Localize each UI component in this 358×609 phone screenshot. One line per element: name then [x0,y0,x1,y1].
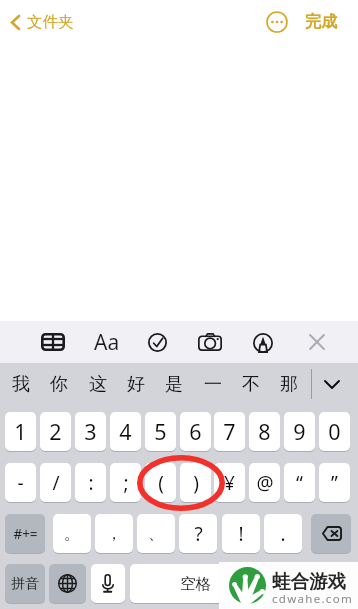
button[interactable]: 。 [53,514,91,553]
button[interactable]: 换行 [264,564,351,603]
staticText: 8 [258,417,271,446]
button[interactable]: 好 [119,368,153,400]
button[interactable]: 那 [272,368,306,400]
button[interactable]: . [264,514,302,553]
staticText: #+= [13,525,38,543]
button[interactable]: ” [319,463,350,502]
staticText: 那 [280,373,298,396]
staticText: . [280,521,286,547]
staticText: 3 [84,417,97,446]
staticText: 6 [189,417,202,446]
button[interactable]: 3 [75,412,106,451]
button[interactable]: “ [284,463,315,502]
staticText: 你 [50,373,68,396]
staticText: ， [106,524,122,544]
staticText: : [88,470,94,496]
staticText: 0 [328,417,341,446]
button[interactable]: 一 [196,368,230,400]
button[interactable]: @ [249,463,280,502]
staticText: ” [331,470,338,496]
button[interactable]: - [5,463,36,502]
button[interactable]: 、 [137,514,175,553]
staticText: 不 [242,373,260,396]
staticText: 9 [293,417,306,446]
button[interactable]: 是 [157,368,191,400]
button[interactable]: 6 [180,412,211,451]
button[interactable]: 你 [42,368,76,400]
staticText: 这 [89,373,107,396]
button[interactable]: ! [222,514,260,553]
button[interactable]: 8 [249,412,280,451]
button[interactable]: ) [180,463,211,502]
button[interactable]: 我 [4,368,38,400]
button[interactable]: ， [95,514,133,553]
staticText: 我 [12,373,30,396]
staticText: 。 [64,524,80,544]
button[interactable]: 4 [110,412,141,451]
button[interactable]: ; [110,463,141,502]
button[interactable]: Markup [253,333,273,353]
button[interactable]: Switch keyboard [49,564,86,603]
button[interactable]: : [75,463,106,502]
staticText: @ [256,470,274,496]
button[interactable]: Checklist [148,333,167,352]
staticText: 空格 [180,574,211,594]
staticText: ! [238,521,244,547]
staticText: ) [193,470,199,496]
button[interactable]: ? [179,514,217,553]
button[interactable]: 拼音 [5,564,45,603]
staticText: 、 [148,524,164,544]
button[interactable]: / [40,463,71,502]
button[interactable]: 这 [81,368,115,400]
button[interactable]: 0 [319,412,350,451]
button[interactable]: #+= [5,514,45,553]
staticText: Aa [94,328,120,357]
staticText: 文件夹 [27,12,74,32]
staticText: 2 [49,417,62,446]
button[interactable]: 1 [5,412,36,451]
staticText: - [17,470,24,496]
button[interactable]: Backspace [311,514,351,553]
button[interactable]: 9 [284,412,315,451]
button[interactable]: 2 [40,412,71,451]
staticText: 换行 [292,574,323,594]
staticText: 好 [127,373,145,396]
button[interactable]: Camera [198,333,222,351]
button[interactable]: Insert table [41,333,65,351]
button[interactable]: Dictation [91,564,125,603]
staticText: 拼音 [11,575,39,593]
button[interactable]: 不 [234,368,268,400]
staticText: 5 [154,417,167,446]
button[interactable]: 文件夹 [9,9,76,35]
button[interactable]: Close keyboard [309,334,325,350]
button[interactable]: 5 [145,412,176,451]
button[interactable]: 7 [214,412,245,451]
button[interactable]: More candidates [316,368,348,400]
button[interactable]: ( [145,463,176,502]
button[interactable]: 完成 [303,10,339,34]
staticText: 完成 [305,12,337,32]
staticText: / [52,470,60,496]
staticText: 1 [14,417,27,446]
staticText: “ [296,470,303,496]
button[interactable]: More options [265,10,288,33]
staticText: ; [123,470,129,496]
staticText: ¥ [224,470,235,496]
button[interactable]: 空格 [130,564,260,603]
button[interactable]: ¥ [214,463,245,502]
staticText: ? [194,521,203,547]
staticText: 4 [119,417,132,446]
button[interactable]: Text format [93,327,121,357]
staticText: 一 [204,373,222,396]
staticText: 7 [223,417,236,446]
staticText: 是 [165,373,183,396]
staticText: 蛙合游戏 [272,570,346,593]
staticText: ( [158,470,164,496]
staticText: cdwahe.com [272,591,353,607]
